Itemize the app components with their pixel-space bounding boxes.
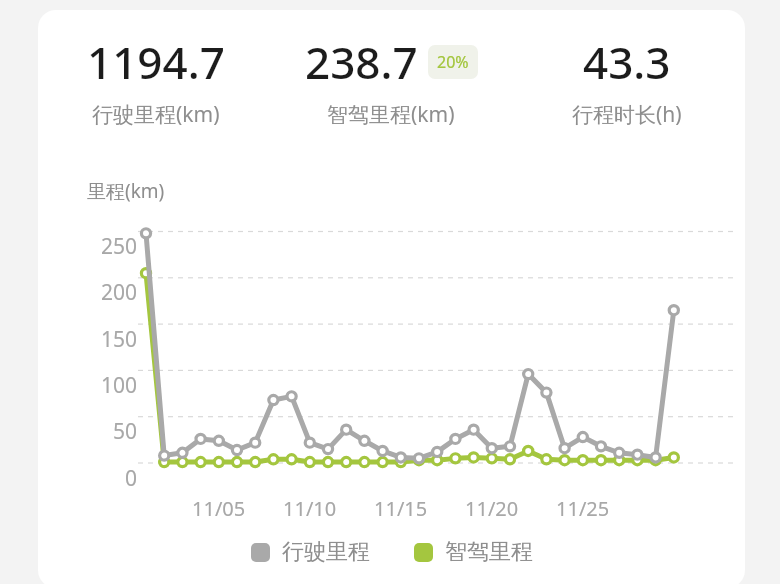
staticText: 行程时长(h) [572,100,682,129]
staticText: 0 [125,464,138,493]
button[interactable]: 智驾里程 [414,538,533,566]
staticText: 行驶里程(km) [92,100,220,129]
staticText: 43.3 [583,32,671,92]
staticText: 11/05 [192,495,246,522]
staticText: 11/25 [556,495,610,522]
staticText: 20% [437,51,469,73]
staticText: 智驾里程(km) [327,100,455,129]
staticText: 50 [113,417,138,446]
button[interactable]: 1194.7 [38,32,273,129]
button[interactable]: 238.7 [273,32,509,129]
staticText: 行驶里程 [282,538,370,566]
staticText: 11/10 [283,495,337,522]
staticText: 238.7 [305,32,418,92]
staticText: 11/20 [465,495,519,522]
staticText: 100 [101,371,138,400]
staticText: 里程(km) [87,178,165,204]
staticText: 200 [101,278,138,307]
staticText: 智驾里程 [445,538,533,566]
staticText: 250 [101,232,138,261]
staticText: 11/15 [374,495,428,522]
staticText: 150 [101,325,138,354]
button[interactable]: 行驶里程 [251,538,370,566]
staticText: 1194.7 [87,32,225,92]
button[interactable]: 43.3 [509,32,745,129]
